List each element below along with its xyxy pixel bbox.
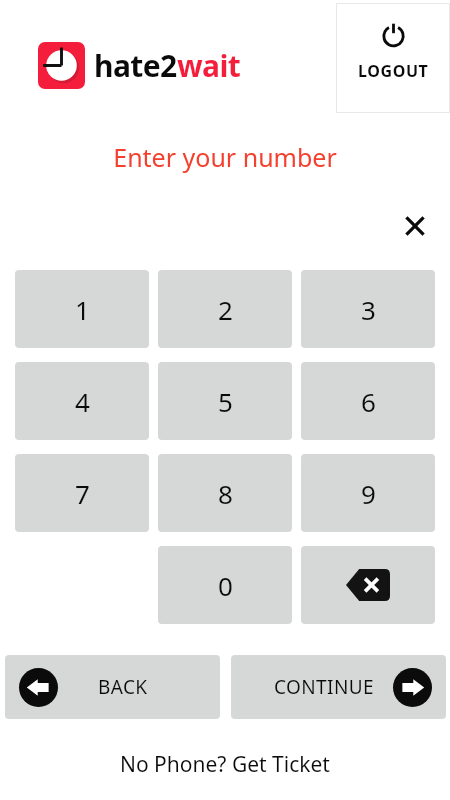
button[interactable]: CONTINUE: [231, 655, 446, 719]
button[interactable]: 3: [301, 270, 435, 348]
button[interactable]: 6: [301, 362, 435, 440]
staticText: 8: [218, 476, 233, 511]
button[interactable]: 4: [15, 362, 149, 440]
staticText: 2: [218, 292, 233, 327]
staticText: 5: [218, 384, 233, 419]
button[interactable]: 9: [301, 454, 435, 532]
staticText: 7: [75, 476, 90, 511]
button[interactable]: 8: [158, 454, 292, 532]
button[interactable]: 7: [15, 454, 149, 532]
button[interactable]: 0: [158, 546, 292, 624]
button[interactable]: Clear: [393, 204, 437, 248]
button[interactable]: LOGOUT: [336, 3, 450, 113]
button[interactable]: Backspace: [301, 546, 435, 624]
button[interactable]: 2: [158, 270, 292, 348]
staticText: CONTINUE: [274, 674, 375, 700]
staticText: 3: [361, 292, 376, 327]
staticText: 0: [218, 568, 233, 603]
button[interactable]: 5: [158, 362, 292, 440]
staticText: 6: [361, 384, 376, 419]
button[interactable]: No Phone? Get Ticket: [112, 746, 338, 783]
staticText: hate2: [94, 45, 177, 86]
staticText: 9: [361, 476, 376, 511]
staticText: LOGOUT: [358, 60, 429, 82]
staticText: 1: [75, 292, 90, 327]
staticText: No Phone? Get Ticket: [120, 750, 330, 779]
staticText: BACK: [98, 674, 148, 700]
button[interactable]: 1: [15, 270, 149, 348]
staticText: Enter your number: [113, 140, 337, 174]
button[interactable]: BACK: [5, 655, 220, 719]
staticText: wait: [177, 45, 241, 86]
staticText: 4: [75, 384, 90, 419]
